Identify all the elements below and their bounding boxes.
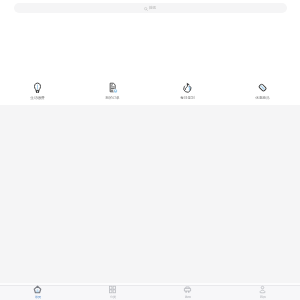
staticText: 优惠商品 [255, 96, 270, 101]
button[interactable]: 我的 [225, 286, 300, 299]
button[interactable]: 优惠商品 [225, 82, 300, 101]
staticText: 搜索 [149, 6, 157, 11]
staticText: 购物 [185, 295, 191, 299]
staticText: 每日签到 [180, 96, 195, 101]
staticText: 首页 [35, 295, 41, 299]
button[interactable]: 购物 [150, 286, 225, 299]
button[interactable]: 我的订单 [75, 82, 150, 101]
staticText: 生活缴费 [30, 96, 45, 101]
button[interactable]: 分类 [75, 286, 150, 299]
staticText: 我的 [260, 295, 266, 299]
button[interactable]: 每日签到 [150, 82, 225, 101]
staticText: 我的订单 [105, 96, 120, 101]
button[interactable]: 首页 [0, 286, 75, 299]
button[interactable]: 生活缴费 [0, 82, 75, 101]
staticText: 分类 [110, 295, 116, 299]
